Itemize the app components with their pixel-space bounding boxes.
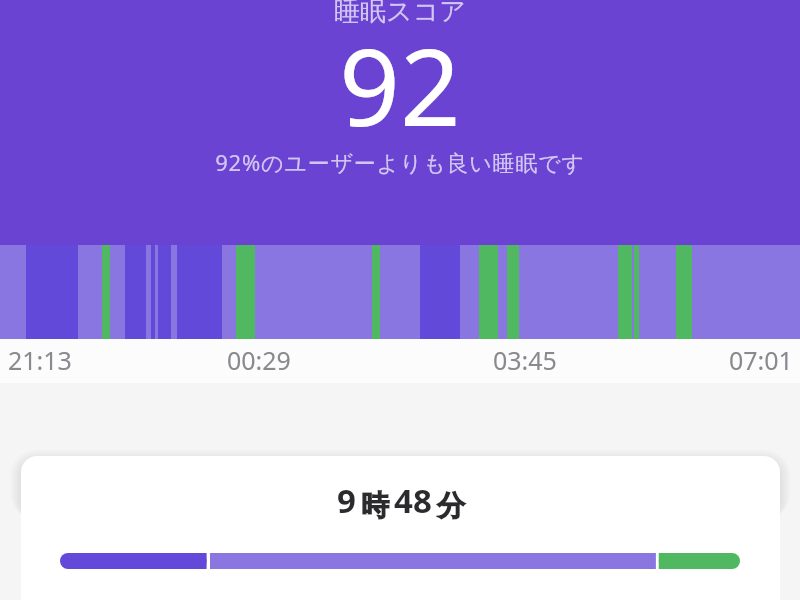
staticText: 48 [394,478,432,523]
staticText: 睡眠スコア [0,0,800,28]
staticText: 07:01 [729,343,793,377]
staticText: 92 [0,13,800,157]
staticText: 00:29 [227,343,291,377]
staticText: 分 [437,488,465,523]
staticText: 時 [361,488,389,523]
staticText: 9 [337,478,356,523]
button[interactable]: 9 [21,456,780,600]
staticText: 03:45 [493,343,557,377]
staticText: 92%のユーザーよりも良い睡眠です [0,147,800,177]
staticText: 21:13 [8,343,72,377]
